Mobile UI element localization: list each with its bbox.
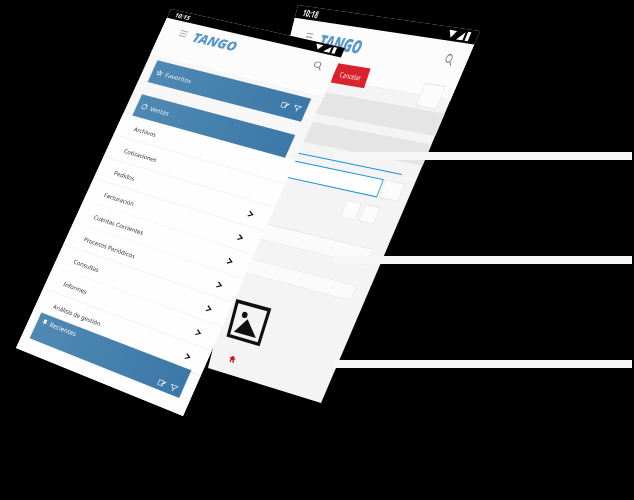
button[interactable]: Cancelar	[112, 72, 184, 102]
button[interactable]: Cotizaciones	[0, 287, 360, 336]
button[interactable]: More	[230, 290, 264, 322]
button[interactable]: Facturación	[0, 385, 360, 434]
staticText: Ventas	[49, 205, 91, 223]
button[interactable]: Search	[314, 34, 338, 58]
button[interactable]: Search	[316, 32, 338, 54]
staticText: Cancelar	[126, 80, 171, 95]
staticText: Pedidos	[36, 353, 81, 369]
button[interactable]: Voice input	[298, 240, 340, 272]
button[interactable]	[16, 240, 292, 272]
button[interactable]: Ventas	[30, 190, 330, 238]
staticText: Cotizaciones	[36, 304, 107, 320]
staticText: Archivos	[36, 255, 84, 271]
button[interactable]: Archivos	[0, 238, 360, 287]
button[interactable]: Options	[300, 80, 340, 114]
staticText: TANGO	[70, 28, 162, 65]
button[interactable]: Favoritos	[30, 113, 330, 162]
staticText: TANGO	[64, 26, 153, 61]
button[interactable]: Pedidos	[0, 336, 360, 385]
